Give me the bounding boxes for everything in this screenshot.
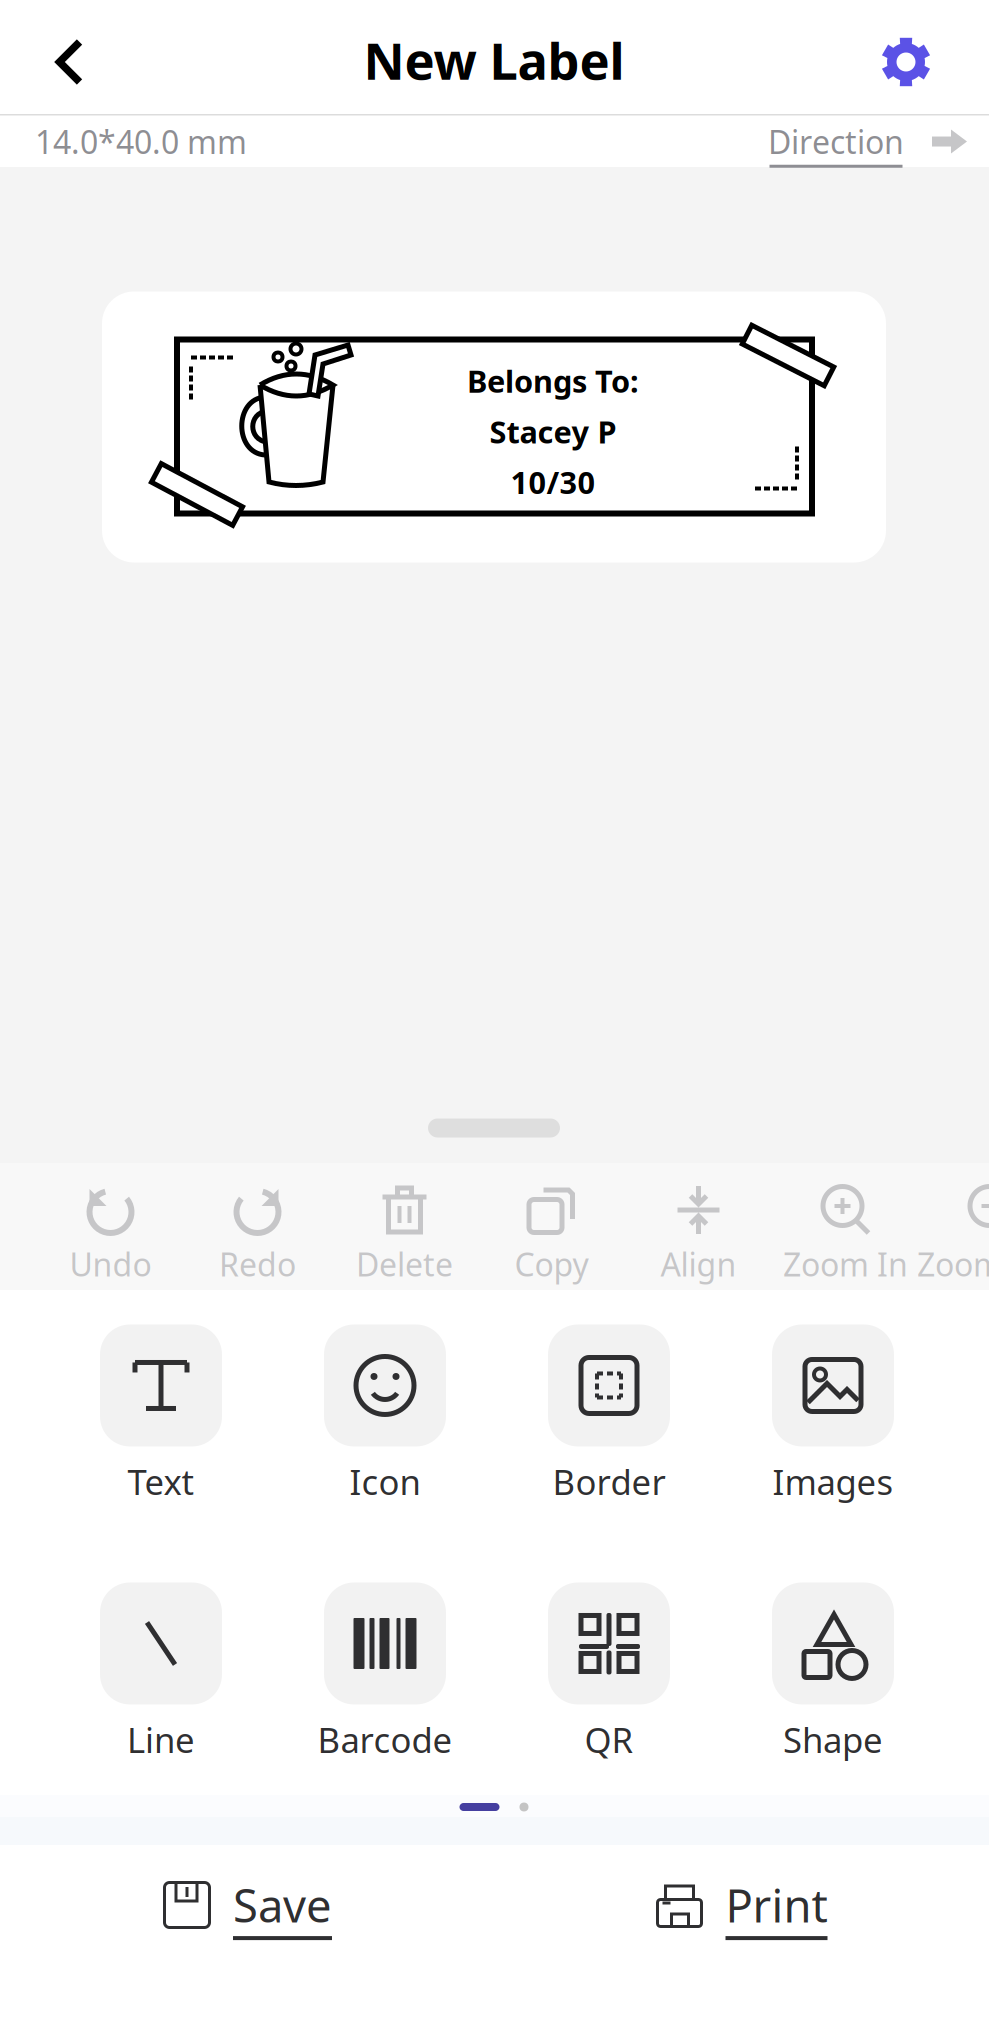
button[interactable]: Images xyxy=(721,1322,945,1504)
button[interactable]: Icon xyxy=(273,1322,497,1504)
button[interactable]: Direction xyxy=(768,116,968,167)
button[interactable]: Zoom Out xyxy=(919,1163,989,1290)
staticText: Copy xyxy=(514,1243,588,1285)
staticText: Direction xyxy=(768,120,904,163)
staticText: Delete xyxy=(356,1243,453,1285)
staticText: Save xyxy=(233,1875,332,1935)
button[interactable]: Delete xyxy=(331,1163,478,1290)
button[interactable]: Shape xyxy=(721,1580,945,1762)
staticText: Undo xyxy=(69,1243,151,1285)
staticText: Line xyxy=(127,1716,195,1762)
staticText: Align xyxy=(660,1243,736,1285)
button[interactable]: Save xyxy=(0,1875,494,1935)
button[interactable]: QR xyxy=(497,1580,721,1762)
staticText: 14.0*40.0 mm xyxy=(35,120,247,163)
button[interactable]: Back xyxy=(18,7,122,117)
button[interactable]: Align xyxy=(625,1163,772,1290)
staticText: Icon xyxy=(349,1458,420,1504)
staticText: Images xyxy=(772,1458,893,1504)
button[interactable]: Line xyxy=(49,1580,273,1762)
staticText: Barcode xyxy=(317,1716,452,1762)
staticText: Print xyxy=(725,1875,827,1935)
button[interactable]: Barcode xyxy=(273,1580,497,1762)
button[interactable]: Redo xyxy=(184,1163,331,1290)
button[interactable]: Copy xyxy=(478,1163,625,1290)
staticText: Zoom Out xyxy=(917,1243,989,1285)
button[interactable]: Settings xyxy=(854,7,958,117)
button[interactable]: Border xyxy=(497,1322,721,1504)
staticText: Belongs To: xyxy=(467,360,639,401)
button[interactable]: Zoom In xyxy=(772,1163,919,1290)
staticText: Shape xyxy=(783,1716,883,1762)
staticText: Zoom In xyxy=(783,1243,908,1285)
staticText: New Label xyxy=(363,26,624,94)
button[interactable]: Print xyxy=(494,1875,988,1935)
staticText: Redo xyxy=(219,1243,296,1285)
button[interactable]: Undo xyxy=(37,1163,184,1290)
staticText: Border xyxy=(552,1458,665,1504)
staticText: Stacey P xyxy=(489,411,616,452)
button[interactable]: Text xyxy=(49,1322,273,1504)
staticText: QR xyxy=(584,1716,633,1762)
staticText: 10/30 xyxy=(510,462,595,503)
staticText: Text xyxy=(127,1458,194,1504)
